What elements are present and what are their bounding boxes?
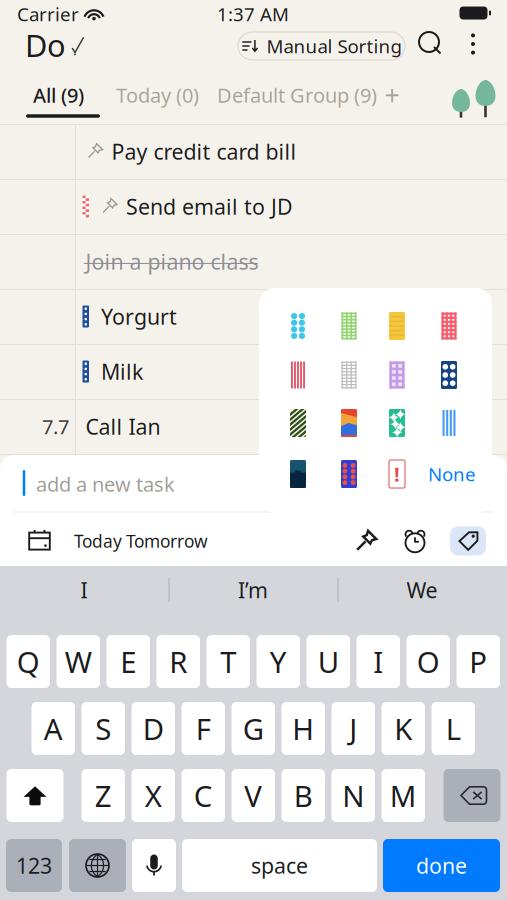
button[interactable]: F — [181, 702, 225, 755]
button[interactable]: Tag style 14 — [341, 460, 357, 488]
staticText: J — [349, 709, 357, 748]
staticText: Do — [25, 25, 66, 65]
button[interactable]: C — [181, 769, 225, 822]
button[interactable]: done — [383, 839, 500, 892]
staticText: N — [342, 776, 364, 815]
button[interactable]: U — [306, 635, 350, 688]
staticText: L — [446, 709, 461, 748]
button[interactable]: S — [81, 702, 125, 755]
button[interactable]: Tag style 1 — [290, 312, 306, 340]
button[interactable]: Do — [25, 25, 85, 65]
staticText: Yorgurt — [101, 302, 177, 331]
staticText: B — [294, 776, 313, 815]
button[interactable]: V — [231, 769, 275, 822]
staticText: space — [251, 851, 308, 880]
button[interactable]: All (9) — [33, 80, 84, 110]
staticText: O — [417, 642, 440, 681]
button[interactable]: Shift — [6, 769, 63, 822]
button[interactable]: Q — [6, 635, 50, 688]
button[interactable]: Tomorrow — [126, 527, 208, 555]
button[interactable]: Tag style 12 — [441, 409, 457, 437]
button[interactable]: Search — [414, 27, 448, 61]
button[interactable]: I’m — [169, 569, 337, 611]
button[interactable]: More options — [459, 29, 487, 59]
button[interactable]: Tag style 2 — [341, 312, 357, 340]
button[interactable]: Milk — [0, 344, 507, 398]
button[interactable]: Reminder — [401, 527, 429, 555]
button[interactable]: Join a piano class — [0, 234, 507, 288]
button[interactable]: M — [381, 769, 425, 822]
button[interactable]: Send email to JD — [0, 179, 507, 233]
staticText: Pay credit card bill — [111, 137, 296, 166]
button[interactable]: A — [31, 702, 75, 755]
button[interactable]: 7.7 — [0, 399, 507, 453]
staticText: Milk — [101, 357, 143, 386]
button[interactable]: G — [231, 702, 275, 755]
button[interactable]: Tag style 8 — [441, 361, 457, 389]
button[interactable]: I — [356, 635, 400, 688]
button[interactable]: R — [156, 635, 200, 688]
staticText: R — [169, 642, 187, 681]
button[interactable]: Add group — [384, 81, 400, 109]
button[interactable]: None — [428, 460, 476, 488]
button[interactable]: T — [206, 635, 250, 688]
button[interactable]: O — [406, 635, 450, 688]
staticText: V — [244, 776, 262, 815]
button[interactable]: Today (0) — [116, 80, 199, 110]
button[interactable]: Next keyboard — [69, 839, 126, 892]
staticText: G — [243, 709, 264, 748]
button[interactable]: Tag style 3 — [389, 312, 405, 340]
staticText: F — [196, 709, 211, 748]
button[interactable]: K — [381, 702, 425, 755]
button[interactable]: Delete — [443, 769, 500, 822]
button[interactable]: B — [281, 769, 325, 822]
button[interactable]: Today — [74, 527, 122, 555]
button[interactable]: space — [182, 839, 377, 892]
staticText: W — [65, 642, 92, 681]
button[interactable]: D — [131, 702, 175, 755]
button[interactable]: Tag style 10 — [341, 409, 357, 437]
button[interactable]: Pin — [351, 526, 381, 556]
staticText: E — [120, 642, 136, 681]
button[interactable]: Tag style 4 — [441, 312, 457, 340]
button[interactable]: W — [56, 635, 100, 688]
button[interactable]: Yorgurt — [0, 289, 507, 343]
button[interactable]: Tag style 5 — [290, 361, 306, 389]
button[interactable]: Manual Sorting — [238, 32, 405, 60]
button[interactable]: Pay credit card bill — [0, 124, 507, 178]
staticText: U — [318, 642, 339, 681]
button[interactable]: We — [338, 569, 506, 611]
staticText: C — [194, 776, 213, 815]
button[interactable]: I — [0, 569, 168, 611]
staticText: K — [394, 709, 412, 748]
button[interactable]: Date — [27, 528, 52, 552]
button[interactable]: P — [456, 635, 500, 688]
staticText: Join a piano class — [85, 247, 258, 276]
staticText: Call Ian — [85, 412, 160, 441]
button[interactable]: L — [431, 702, 475, 755]
button[interactable]: Dictate — [132, 839, 176, 892]
button[interactable]: Y — [256, 635, 300, 688]
button[interactable]: H — [281, 702, 325, 755]
button[interactable]: Tag style 6 — [341, 361, 357, 389]
button[interactable]: Tag style 15 — [389, 460, 405, 488]
button[interactable]: Default Group (9) — [217, 80, 377, 110]
staticText: None — [428, 462, 476, 486]
button[interactable]: N — [331, 769, 375, 822]
button[interactable]: Tag style 11 — [389, 409, 405, 437]
button[interactable]: J — [331, 702, 375, 755]
button[interactable]: Tag style 13 — [290, 460, 306, 488]
button[interactable]: Tag style 7 — [389, 361, 405, 389]
staticText: 123 — [16, 851, 52, 880]
button[interactable]: X — [131, 769, 175, 822]
button[interactable]: E — [106, 635, 150, 688]
staticText: H — [292, 709, 314, 748]
staticText: D — [143, 709, 164, 748]
staticText: done — [416, 851, 467, 880]
staticText: We — [406, 576, 437, 604]
button[interactable]: 123 — [6, 839, 62, 892]
button[interactable]: Z — [81, 769, 125, 822]
staticText: Manual Sorting — [266, 34, 401, 58]
button[interactable]: Tag — [450, 526, 486, 555]
button[interactable]: Tag style 9 — [290, 409, 306, 437]
